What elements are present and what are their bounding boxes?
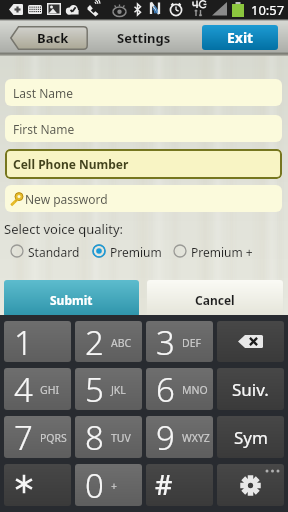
staticText: 9 xyxy=(156,416,175,457)
staticText: New password xyxy=(25,191,108,207)
button[interactable]: Suiv. xyxy=(217,368,284,410)
staticText: # xyxy=(155,466,173,503)
staticText: Suiv. xyxy=(232,378,269,401)
button[interactable]: 7 xyxy=(4,416,71,458)
staticText: PQRS xyxy=(40,431,67,445)
staticText: Submit xyxy=(50,292,93,308)
button[interactable]: Cancel xyxy=(147,280,283,317)
staticText: 4 xyxy=(14,368,33,409)
button[interactable]: 9 xyxy=(146,416,213,458)
button[interactable]: Last Name xyxy=(5,79,282,106)
button[interactable]: 6 xyxy=(146,368,213,410)
staticText: Exit xyxy=(227,28,254,47)
button[interactable]: 1 xyxy=(4,321,71,362)
staticText: MNO xyxy=(182,383,208,397)
button[interactable]: 4 xyxy=(4,368,71,410)
staticText: Settings xyxy=(117,29,171,47)
button[interactable]: Keyboard settings xyxy=(217,464,284,506)
staticText: 6 xyxy=(156,368,175,409)
button[interactable] xyxy=(4,464,71,506)
staticText: 3 xyxy=(156,321,175,361)
button[interactable]: Cell Phone Number xyxy=(5,149,282,179)
staticText: JKL xyxy=(111,383,126,397)
staticText: 8 xyxy=(85,416,104,457)
staticText: WXYZ xyxy=(182,431,210,445)
staticText: 5 xyxy=(85,368,104,409)
button[interactable]: 5 xyxy=(75,368,142,410)
button[interactable]: First Name xyxy=(5,115,282,142)
staticText: TUV xyxy=(111,431,131,445)
staticText: Sym xyxy=(234,426,268,449)
staticText: Premium + xyxy=(191,244,253,258)
staticText: First Name xyxy=(13,121,75,137)
staticText: Select voice quality: xyxy=(4,220,124,238)
staticText: Premium xyxy=(110,244,162,258)
staticText: 0 xyxy=(85,464,104,505)
button[interactable]: Premium + xyxy=(173,244,253,258)
staticText: Standard xyxy=(28,244,80,258)
button[interactable]: 3 xyxy=(146,321,213,362)
button[interactable]: Back xyxy=(10,26,88,50)
button[interactable]: Submit xyxy=(4,280,139,317)
staticText: 10:57 xyxy=(251,1,285,19)
button[interactable]: Premium xyxy=(92,244,162,258)
staticText: GHI xyxy=(40,383,59,397)
button[interactable]: 8 xyxy=(75,416,142,458)
staticText: Back xyxy=(37,29,69,47)
staticText: 2 xyxy=(85,321,104,361)
button[interactable]: 0 xyxy=(75,464,142,506)
staticText: 1 xyxy=(14,321,33,361)
staticText: DEF xyxy=(182,336,201,350)
button[interactable]: Sym xyxy=(217,416,284,458)
staticText: 7 xyxy=(14,416,33,457)
button[interactable]: 2 xyxy=(75,321,142,362)
button[interactable]: Exit xyxy=(202,25,278,50)
staticText: Cancel xyxy=(195,292,235,308)
button[interactable]: # xyxy=(146,464,213,506)
button[interactable]: Backspace xyxy=(217,321,284,362)
staticText: ABC xyxy=(111,336,132,350)
staticText: Cell Phone Number xyxy=(13,156,129,172)
staticText: Last Name xyxy=(13,85,74,101)
button[interactable]: New password xyxy=(5,185,282,212)
staticText: + xyxy=(111,479,118,493)
button[interactable]: Standard xyxy=(10,244,80,258)
